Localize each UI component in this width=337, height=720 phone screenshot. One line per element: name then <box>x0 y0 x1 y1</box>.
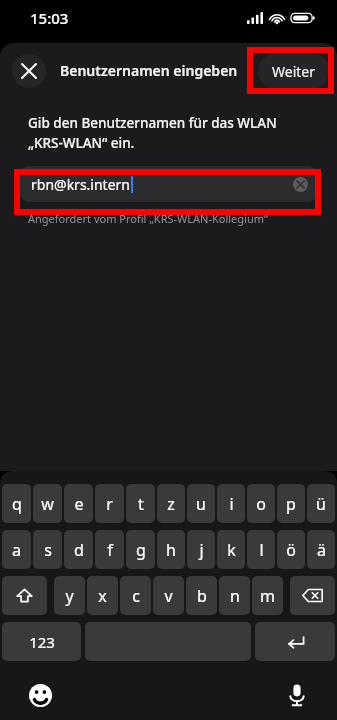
staticText: a <box>12 539 21 561</box>
button[interactable]: h <box>157 530 185 569</box>
staticText: p <box>286 493 296 515</box>
button[interactable]: c <box>120 576 151 615</box>
button[interactable]: Löschen <box>290 576 335 615</box>
staticText: Gib den Benutzernamen für das WLAN „KRS-… <box>28 114 277 152</box>
staticText: y <box>65 585 74 607</box>
button[interactable]: r <box>95 484 124 523</box>
button[interactable]: b <box>186 576 217 615</box>
button[interactable]: 123 <box>2 622 81 661</box>
button[interactable]: y <box>54 576 85 615</box>
button[interactable]: l <box>247 530 275 569</box>
button[interactable]: Eingabe <box>255 622 335 661</box>
button[interactable]: e <box>64 484 93 523</box>
button[interactable]: d <box>64 530 93 569</box>
button[interactable]: o <box>247 484 275 523</box>
staticText: v <box>164 585 173 607</box>
staticText: q <box>12 493 22 515</box>
staticText: ö <box>286 539 296 561</box>
button[interactable]: x <box>87 576 118 615</box>
button[interactable]: Schließen <box>12 54 46 88</box>
staticText: h <box>166 539 176 561</box>
staticText: l <box>259 539 264 561</box>
staticText: rbn@krs.intern <box>31 175 130 194</box>
staticText: u <box>196 493 206 515</box>
button[interactable]: Text löschen <box>293 177 308 192</box>
button[interactable]: p <box>277 484 305 523</box>
staticText: j <box>199 539 204 561</box>
staticText: t <box>138 493 144 515</box>
staticText: Weiter <box>272 62 315 81</box>
staticText: m <box>260 585 275 607</box>
button[interactable]: z <box>157 484 185 523</box>
button[interactable]: Emoji <box>24 679 56 711</box>
staticText: r <box>106 493 113 515</box>
button[interactable]: ä <box>307 530 335 569</box>
button[interactable]: t <box>126 484 155 523</box>
staticText: f <box>107 539 113 561</box>
staticText: 15:03 <box>30 8 69 28</box>
button[interactable]: a <box>2 530 31 569</box>
staticText: k <box>227 539 236 561</box>
staticText: o <box>256 493 266 515</box>
button[interactable]: m <box>252 576 283 615</box>
staticText: e <box>74 493 84 515</box>
staticText: w <box>41 493 54 515</box>
staticText: 123 <box>29 632 55 652</box>
button[interactable]: g <box>126 530 155 569</box>
staticText: Benutzernamen eingeben <box>60 61 238 80</box>
button[interactable]: Spracheingabe <box>281 679 313 711</box>
staticText: s <box>44 539 52 561</box>
staticText: ü <box>316 493 326 515</box>
staticText: n <box>230 585 240 607</box>
staticText: i <box>229 493 234 515</box>
staticText: ä <box>317 539 326 561</box>
staticText: Angefordert vom Profil „KRS-WLAN-Kollegi… <box>28 211 268 226</box>
staticText: g <box>136 539 146 561</box>
button[interactable]: v <box>153 576 184 615</box>
button[interactable]: n <box>219 576 250 615</box>
button[interactable]: w <box>33 484 62 523</box>
staticText: d <box>74 539 84 561</box>
button[interactable]: s <box>33 530 62 569</box>
button[interactable]: j <box>187 530 215 569</box>
button[interactable]: f <box>95 530 124 569</box>
button[interactable]: k <box>217 530 245 569</box>
staticText: x <box>98 585 107 607</box>
staticText: c <box>132 585 140 607</box>
button[interactable]: q <box>2 484 31 523</box>
button[interactable]: u <box>187 484 215 523</box>
button[interactable]: ö <box>277 530 305 569</box>
button[interactable]: rbn@krs.intern <box>20 166 317 202</box>
button[interactable]: ü <box>307 484 335 523</box>
button[interactable]: i <box>217 484 245 523</box>
staticText: z <box>167 493 175 515</box>
button[interactable]: Umschalt <box>2 576 47 615</box>
button[interactable]: Weiter <box>258 53 329 89</box>
staticText: b <box>197 585 207 607</box>
